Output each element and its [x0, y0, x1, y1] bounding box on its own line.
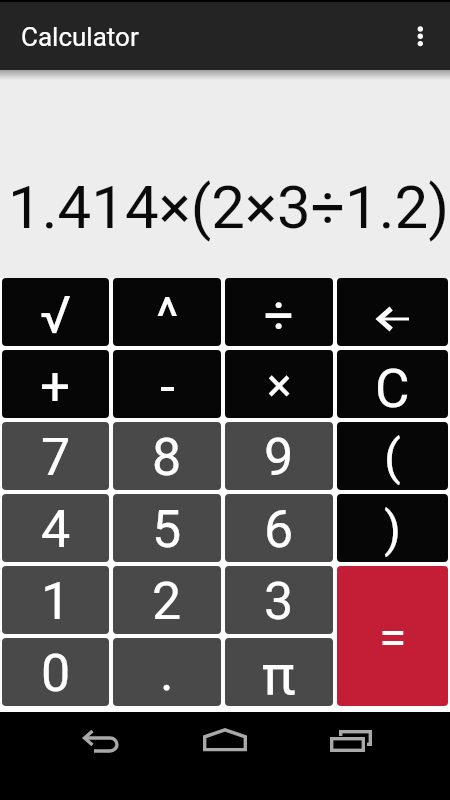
staticText: ): [384, 501, 402, 558]
button[interactable]: .: [113, 638, 221, 706]
button[interactable]: =: [337, 566, 448, 706]
button[interactable]: ^: [113, 278, 221, 346]
staticText: 3: [264, 571, 294, 632]
button[interactable]: ×: [225, 350, 333, 418]
button[interactable]: -: [113, 350, 221, 418]
staticText: -: [160, 355, 175, 418]
staticText: ×: [267, 358, 292, 412]
button[interactable]: 7: [2, 422, 109, 490]
button[interactable]: [337, 278, 448, 346]
staticText: 0: [41, 643, 71, 704]
button[interactable]: 0: [2, 638, 109, 706]
button[interactable]: [392, 0, 450, 70]
staticText: 8: [152, 427, 182, 488]
button[interactable]: 6: [225, 494, 333, 562]
button[interactable]: (: [337, 422, 448, 490]
button[interactable]: [73, 728, 143, 776]
button[interactable]: C: [337, 350, 448, 418]
staticText: 5: [152, 499, 182, 560]
button[interactable]: ÷: [225, 278, 333, 346]
button[interactable]: 2: [113, 566, 221, 634]
staticText: Calculator: [21, 22, 139, 52]
staticText: 4: [41, 499, 71, 560]
staticText: =: [379, 609, 407, 668]
button[interactable]: 9: [225, 422, 333, 490]
button[interactable]: [314, 728, 384, 776]
staticText: (: [384, 429, 401, 486]
button[interactable]: 3: [225, 566, 333, 634]
button[interactable]: [190, 728, 260, 776]
button[interactable]: 8: [113, 422, 221, 490]
staticText: C: [375, 358, 410, 418]
staticText: 6: [264, 499, 294, 560]
button[interactable]: ): [337, 494, 448, 562]
button[interactable]: 1: [2, 566, 109, 634]
staticText: ^: [156, 285, 179, 346]
staticText: +: [40, 356, 71, 418]
staticText: .: [160, 642, 174, 703]
staticText: 2: [152, 571, 182, 632]
staticText: ÷: [264, 285, 294, 346]
staticText: 1.414×(2×3÷1.2): [8, 172, 450, 242]
button[interactable]: π: [225, 638, 333, 706]
staticText: √: [40, 285, 72, 346]
button[interactable]: 4: [2, 494, 109, 562]
button[interactable]: 5: [113, 494, 221, 562]
staticText: 1: [41, 571, 71, 632]
staticText: π: [262, 642, 296, 706]
button[interactable]: +: [2, 350, 109, 418]
staticText: 9: [264, 427, 294, 488]
staticText: 7: [41, 427, 71, 488]
button[interactable]: √: [2, 278, 109, 346]
